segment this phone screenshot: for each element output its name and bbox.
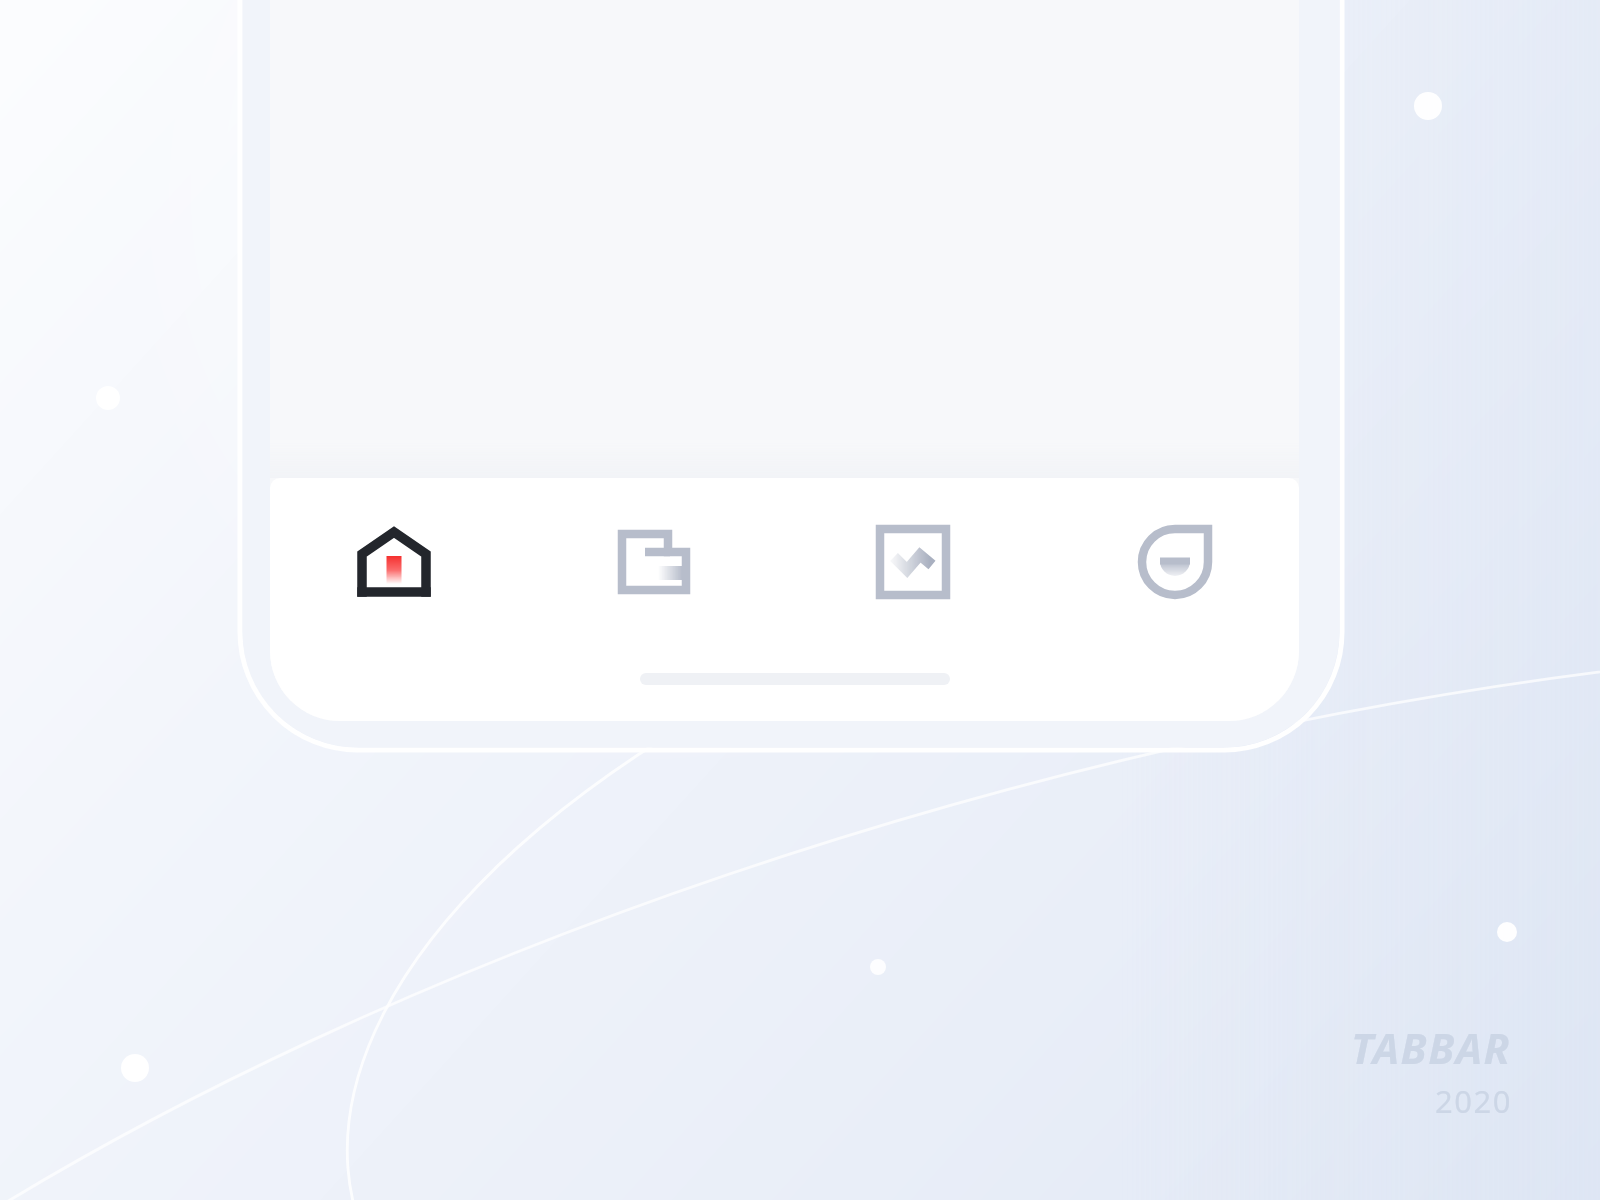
button[interactable]: Home xyxy=(330,498,458,626)
button[interactable]: Profile xyxy=(1111,498,1239,626)
button[interactable]: Files xyxy=(590,498,718,626)
staticText: 2020 xyxy=(1435,1080,1512,1122)
staticText: TABBAR xyxy=(1351,1019,1512,1076)
button[interactable]: Activity xyxy=(849,498,977,626)
